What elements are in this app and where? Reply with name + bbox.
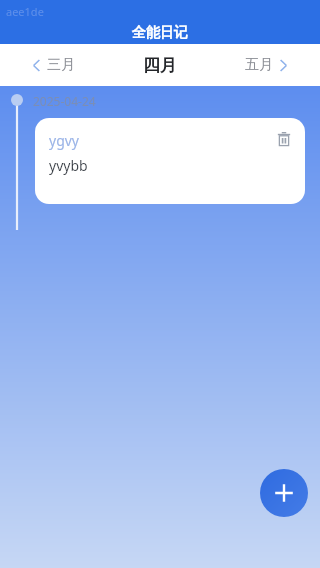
button[interactable]: 四月 [106, 44, 213, 86]
button[interactable]: Delete entry [272, 127, 296, 151]
staticText: 全能日记 [132, 24, 188, 42]
button[interactable]: 三月 [0, 44, 106, 86]
staticText: yvybb [49, 156, 88, 175]
staticText: ygvy [49, 131, 80, 150]
staticText: 四月 [143, 55, 177, 76]
staticText: 2025-04-24 [33, 93, 96, 109]
button[interactable]: Add new entry [260, 469, 308, 517]
staticText: 五月 [245, 56, 273, 74]
staticText: 三月 [47, 56, 75, 74]
button[interactable]: 五月 [213, 44, 320, 86]
staticText: aee1de [6, 4, 44, 19]
button[interactable]: ygvy [35, 118, 305, 204]
